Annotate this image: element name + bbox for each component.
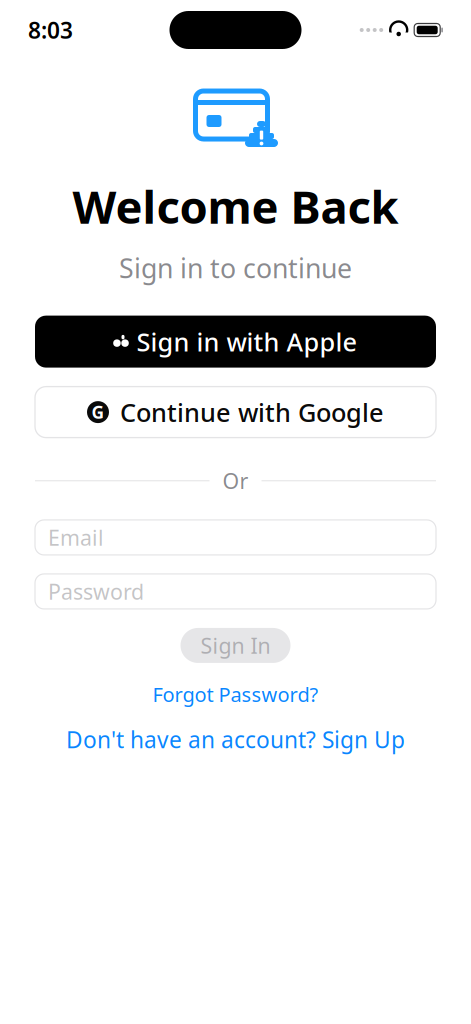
staticText: Welcome Back (72, 176, 398, 236)
button[interactable]: Sign In (180, 628, 290, 663)
staticText: Sign in with Apple (136, 325, 357, 358)
staticText: Password (48, 577, 144, 606)
staticText: Don't have an account? Sign Up (66, 724, 405, 755)
button[interactable]: Forgot Password? (140, 675, 330, 713)
staticText: Forgot Password? (152, 681, 318, 707)
button[interactable]: Password (35, 574, 436, 609)
staticText: Sign In (200, 631, 270, 660)
staticText: 8:03 (28, 15, 73, 45)
staticText: Sign in to continue (119, 250, 352, 286)
button[interactable]: Sign in with Apple (35, 316, 436, 368)
button[interactable]: Email (35, 520, 436, 555)
staticText: G (91, 401, 104, 424)
staticText: Email (48, 523, 104, 552)
button[interactable]: Don't have an account? Sign Up (54, 718, 417, 761)
staticText: Continue with Google (120, 395, 384, 429)
staticText: Or (222, 467, 248, 495)
button[interactable]: G (35, 387, 436, 438)
